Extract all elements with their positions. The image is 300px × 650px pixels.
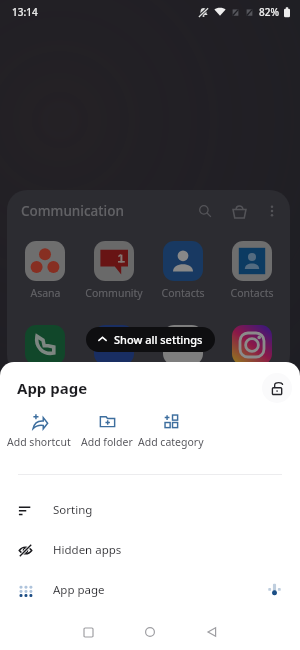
button[interactable]: More options bbox=[259, 198, 285, 224]
button[interactable]: Sorting bbox=[0, 490, 300, 530]
button[interactable]: Community bbox=[83, 241, 145, 300]
button[interactable] bbox=[152, 325, 214, 365]
staticText: 82% bbox=[259, 5, 279, 19]
button[interactable]: Add shortcut bbox=[0, 411, 78, 451]
button[interactable]: Contacts bbox=[152, 241, 214, 300]
staticText: Show all settings bbox=[114, 332, 203, 347]
button[interactable]: Add category bbox=[136, 411, 206, 451]
staticText: 13:14 bbox=[12, 5, 38, 19]
button[interactable]: Store bbox=[226, 198, 252, 224]
button[interactable]: App page bbox=[0, 570, 300, 610]
staticText: App page bbox=[17, 378, 88, 398]
button[interactable] bbox=[221, 325, 283, 365]
staticText: Sorting bbox=[53, 502, 93, 518]
staticText: Asana bbox=[30, 286, 61, 300]
button[interactable]: Add folder bbox=[78, 411, 136, 451]
button[interactable]: Recents bbox=[68, 614, 108, 650]
button[interactable]: Home bbox=[130, 614, 170, 650]
staticText: Add folder bbox=[81, 435, 133, 449]
button[interactable]: Show all settings bbox=[86, 327, 215, 352]
button[interactable] bbox=[14, 325, 76, 365]
button[interactable] bbox=[83, 325, 145, 365]
staticText: App page bbox=[53, 582, 105, 598]
staticText: Hidden apps bbox=[53, 542, 122, 558]
staticText: Add shortcut bbox=[7, 435, 71, 449]
button[interactable]: Contacts bbox=[221, 241, 283, 300]
staticText: Contacts bbox=[161, 286, 205, 300]
staticText: Add category bbox=[138, 435, 204, 449]
button[interactable]: Search bbox=[192, 198, 218, 224]
button[interactable]: Hidden apps bbox=[0, 530, 300, 570]
button[interactable]: Asana bbox=[14, 241, 76, 300]
button[interactable]: Back bbox=[192, 614, 232, 650]
button[interactable]: Unlock bbox=[262, 373, 292, 403]
staticText: Contacts bbox=[230, 286, 274, 300]
staticText: Communication bbox=[21, 202, 124, 220]
staticText: Community bbox=[85, 286, 143, 300]
